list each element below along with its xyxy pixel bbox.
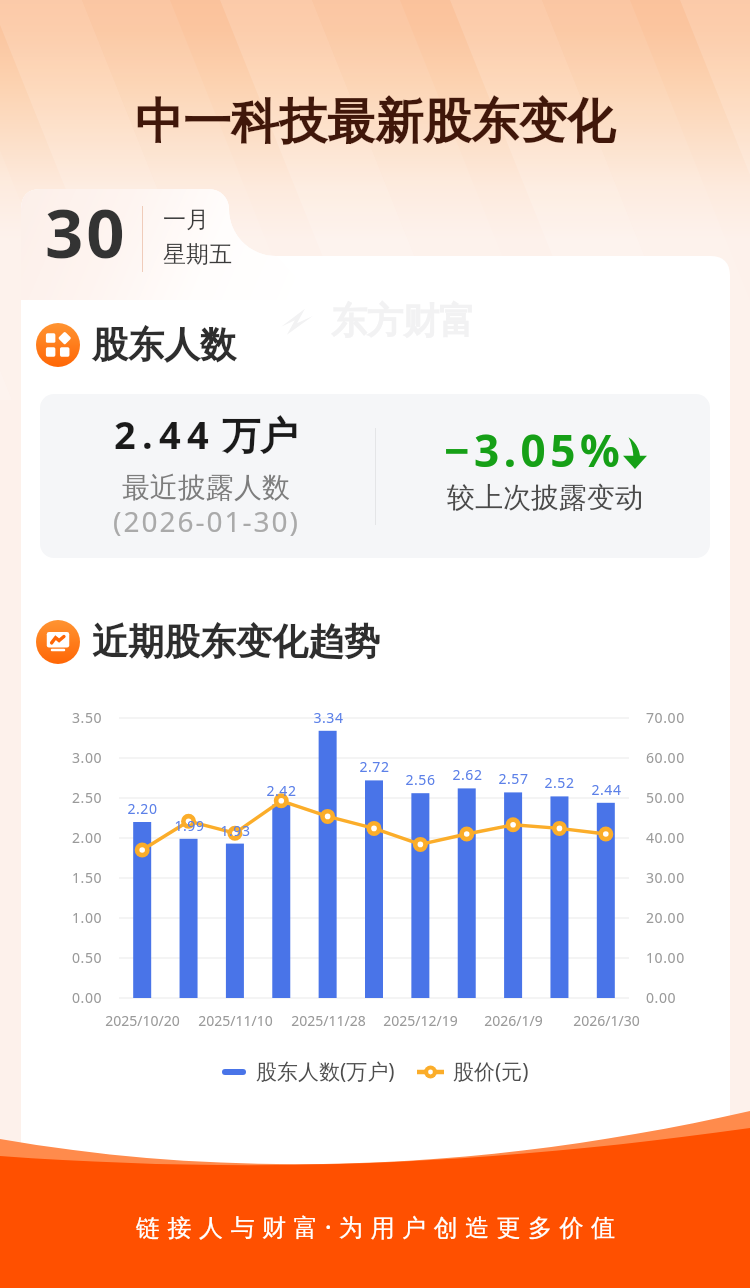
staticText: 2025/12/19: [383, 1011, 458, 1030]
staticText: 40.00: [646, 828, 685, 847]
staticText: 2.50: [72, 788, 103, 807]
staticText: 近期股东变化趋势: [92, 619, 380, 664]
staticText: 2.56: [405, 770, 436, 789]
button[interactable]: 股东人数: [36, 323, 80, 367]
staticText: 2.00: [72, 828, 103, 847]
staticText: 1.93: [220, 821, 251, 840]
staticText: 2.44: [591, 780, 622, 799]
staticText: 2025/10/20: [105, 1011, 180, 1030]
staticText: 万户: [222, 412, 298, 460]
staticText: 0.00: [72, 988, 103, 1007]
staticText: 最近披露人数: [122, 470, 290, 505]
staticText: 股东人数(万户): [256, 1057, 395, 1086]
button[interactable]: 近期股东变化趋势: [36, 620, 80, 664]
staticText: 东方财富: [331, 298, 475, 343]
staticText: 1.00: [72, 908, 103, 927]
staticText: 2025/11/10: [198, 1011, 273, 1030]
staticText: 2025/11/28: [291, 1011, 366, 1030]
staticText: 50.00: [646, 788, 685, 807]
staticText: 股东人数: [92, 322, 236, 367]
staticText: 链接人与财富·为用户创造更多价值: [136, 1210, 623, 1243]
staticText: 30.00: [646, 868, 685, 887]
staticText: 2.42: [266, 781, 297, 800]
staticText: 3.34: [313, 708, 344, 727]
staticText: 3.50: [72, 708, 103, 727]
staticText: 10.00: [646, 948, 685, 967]
staticText: 0.50: [72, 948, 103, 967]
staticText: 20.00: [646, 908, 685, 927]
staticText: 2.62: [452, 765, 483, 784]
staticText: 2026/1/9: [484, 1011, 543, 1030]
staticText: 1.50: [72, 868, 103, 887]
staticText: 2026/1/30: [573, 1011, 640, 1030]
staticText: 3.00: [72, 748, 103, 767]
staticText: 中一科技最新股东变化: [135, 92, 615, 152]
staticText: 2.52: [544, 773, 575, 792]
staticText: 2.44: [114, 408, 216, 460]
staticText: 1.99: [174, 816, 205, 835]
staticText: 较上次披露变动: [447, 480, 643, 515]
staticText: 70.00: [646, 708, 685, 727]
staticText: 2.72: [359, 757, 390, 776]
staticText: 星期五: [163, 240, 232, 269]
staticText: 60.00: [646, 748, 685, 767]
staticText: 一月: [163, 205, 209, 234]
staticText: 2.20: [127, 799, 158, 818]
staticText: 2.57: [498, 769, 529, 788]
staticText: 30: [45, 186, 128, 277]
staticText: −3.05%: [444, 420, 625, 480]
staticText: 0.00: [646, 988, 677, 1007]
staticText: 股价(元): [453, 1057, 529, 1086]
staticText: (2026-01-30): [113, 502, 300, 540]
